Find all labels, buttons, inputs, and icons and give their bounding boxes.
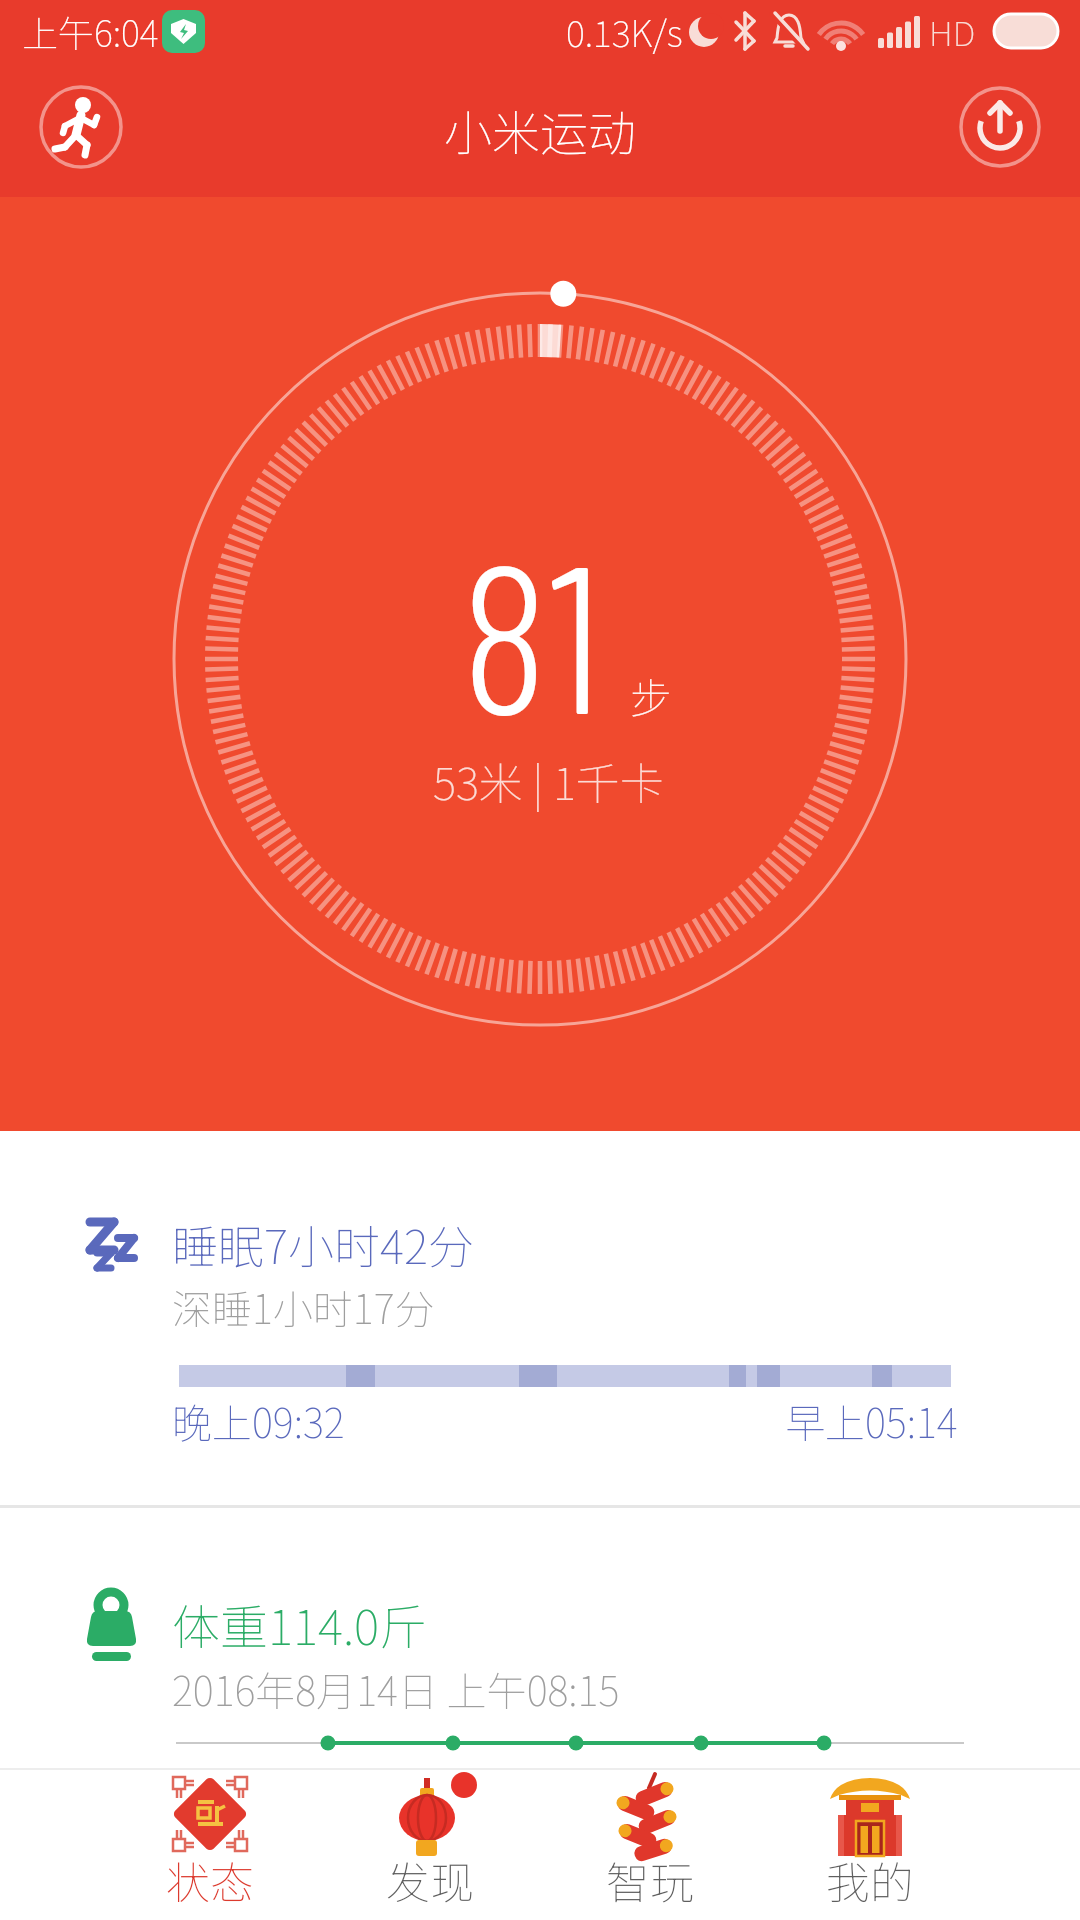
button[interactable] [960, 87, 1040, 167]
button[interactable] [39, 85, 123, 169]
staticText: 81 [461, 506, 612, 756]
staticText: 步 [630, 665, 673, 726]
staticText: 我的 [826, 1848, 914, 1912]
staticText: 53米 | 1千卡 [433, 749, 664, 813]
staticText: 2016年8月14日 上午08:15 [172, 1660, 620, 1718]
button[interactable]: 状态 [100, 1768, 320, 1920]
button[interactable]: 体重114.0斤 [0, 1508, 1080, 1766]
staticText: 深睡1小时17分 [172, 1278, 435, 1336]
staticText: 晚上09:32 [172, 1392, 345, 1450]
staticText: 睡眠7小时42分 [172, 1211, 474, 1278]
staticText: 早上05:14 [785, 1392, 958, 1450]
staticText: 小米运动 [444, 95, 637, 165]
staticText: 体重114.0斤 [172, 1589, 428, 1659]
button[interactable]: 我的 [760, 1768, 980, 1920]
staticText: HD [929, 7, 976, 56]
staticText: 智玩 [606, 1848, 694, 1912]
staticText: 状态 [166, 1848, 254, 1912]
staticText: 发现 [386, 1848, 474, 1912]
button[interactable]: 睡眠7小时42分 [0, 1131, 1080, 1505]
staticText: 上午6:04 [22, 5, 159, 57]
button[interactable]: 发现 [320, 1768, 540, 1920]
button[interactable]: 智玩 [540, 1768, 760, 1920]
staticText: 0.13K/s [566, 5, 683, 57]
